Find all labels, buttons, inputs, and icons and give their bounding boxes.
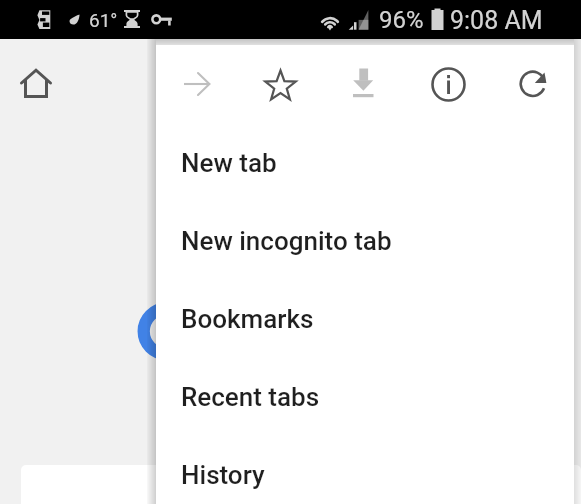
button[interactable]: Home	[20, 68, 52, 100]
staticText: Bookmarks	[181, 304, 314, 334]
button[interactable]: Download	[342, 62, 384, 104]
button[interactable]: History	[156, 436, 574, 504]
staticText: New tab	[181, 148, 277, 178]
staticText: Recent tabs	[181, 382, 320, 412]
staticText: 61°	[89, 9, 118, 31]
staticText: 9:08 AM	[450, 6, 543, 35]
button[interactable]: Recent tabs	[156, 358, 574, 436]
button[interactable]: Page info	[425, 61, 472, 108]
button[interactable]: Bookmarks	[156, 280, 574, 358]
button[interactable]: Reload	[512, 63, 555, 106]
button[interactable]: Forward	[177, 64, 217, 104]
button[interactable]: Bookmark	[258, 63, 303, 108]
staticText: 96%	[379, 6, 424, 34]
button[interactable]: New incognito tab	[156, 202, 574, 280]
button[interactable]: New tab	[156, 124, 574, 202]
staticText: New incognito tab	[181, 226, 392, 256]
staticText: History	[181, 460, 265, 490]
